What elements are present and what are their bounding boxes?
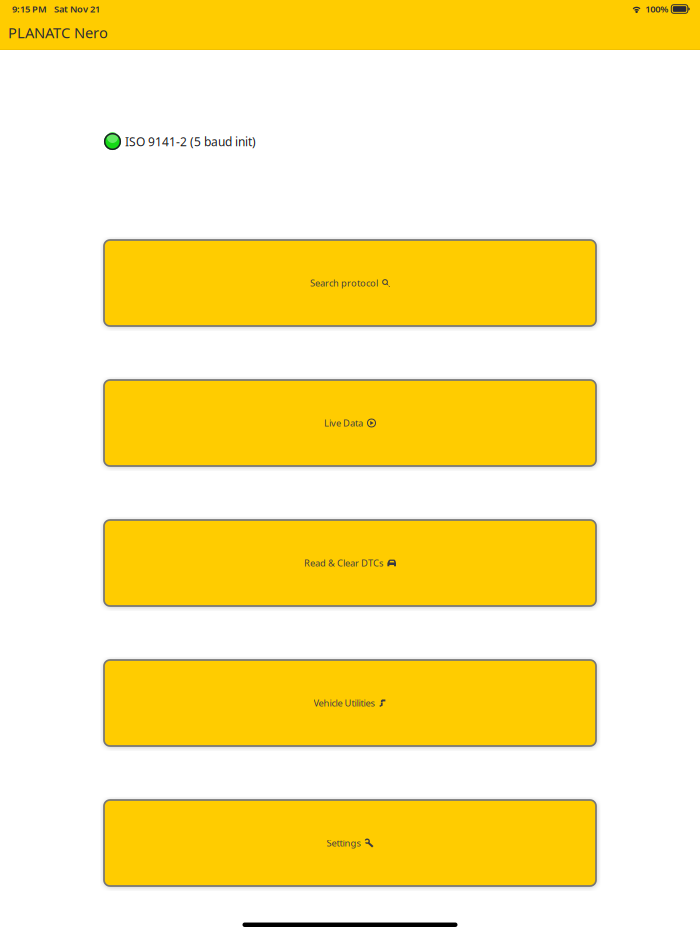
- staticText: Live Data: [324, 417, 363, 429]
- button[interactable]: Search protocol: [104, 240, 596, 326]
- staticText: 9:15 PM: [12, 3, 47, 15]
- button[interactable]: Live Data: [104, 380, 596, 466]
- button[interactable]: Settings: [104, 800, 596, 886]
- staticText: PLANATC Nero: [8, 23, 108, 42]
- button[interactable]: Vehicle Utilities: [104, 660, 596, 746]
- staticText: Sat Nov 21: [54, 3, 100, 15]
- staticText: 100%: [645, 3, 668, 15]
- button[interactable]: Read & Clear DTCs: [104, 520, 596, 606]
- staticText: Vehicle Utilities: [313, 697, 374, 709]
- staticText: ISO 9141-2 (5 baud init): [125, 133, 256, 149]
- staticText: Search protocol: [310, 277, 378, 289]
- staticText: Settings: [326, 837, 360, 849]
- staticText: Read & Clear DTCs: [304, 557, 383, 569]
